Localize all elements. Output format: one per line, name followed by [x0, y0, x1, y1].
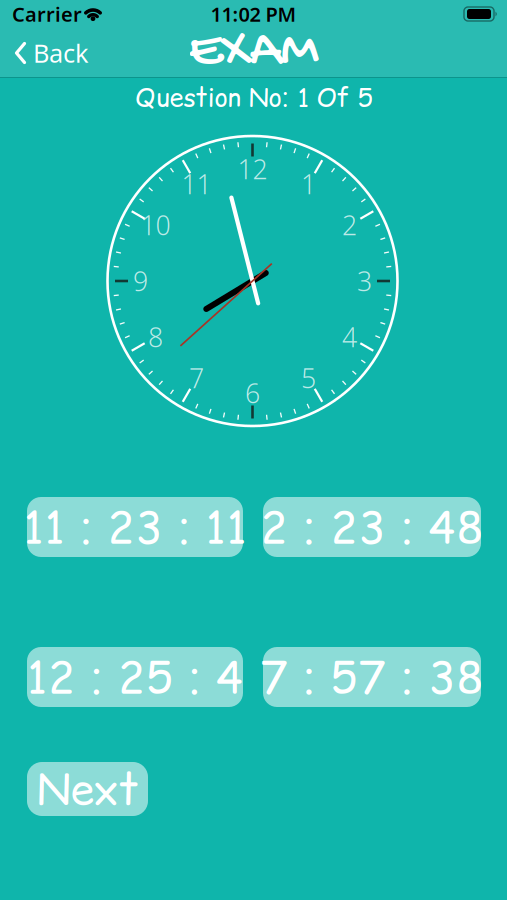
- button[interactable]: 7 : 57 : 38: [263, 647, 481, 707]
- button[interactable]: Back: [15, 36, 89, 70]
- staticText: Next: [36, 759, 138, 819]
- button[interactable]: Next: [27, 762, 148, 816]
- staticText: Back: [33, 36, 89, 70]
- staticText: 10: [140, 207, 170, 243]
- staticText: 9: [133, 263, 148, 299]
- staticText: 6: [245, 375, 260, 411]
- staticText: 2: [342, 207, 357, 243]
- staticText: 12: [237, 151, 267, 187]
- staticText: 12 : 25 : 4: [27, 646, 243, 708]
- staticText: 4: [342, 319, 357, 355]
- staticText: Question No: 1 Of 5: [134, 79, 372, 115]
- staticText: 11 : 23 : 11: [23, 496, 246, 558]
- staticText: 1: [301, 166, 316, 202]
- button[interactable]: 12 : 25 : 4: [27, 647, 243, 707]
- staticText: 7: [189, 360, 204, 396]
- staticText: 3: [357, 263, 372, 299]
- staticText: 8: [148, 319, 163, 355]
- staticText: 7 : 57 : 38: [260, 646, 483, 708]
- staticText: 5: [301, 360, 316, 396]
- staticText: EXAM: [188, 20, 318, 84]
- button[interactable]: 11 : 23 : 11: [27, 497, 243, 557]
- button[interactable]: 2 : 23 : 48: [263, 497, 481, 557]
- staticText: 11: [181, 166, 211, 202]
- staticText: 2 : 23 : 48: [260, 496, 483, 558]
- staticText: 11:02 PM: [210, 1, 296, 27]
- staticText: Carrier: [12, 1, 82, 27]
